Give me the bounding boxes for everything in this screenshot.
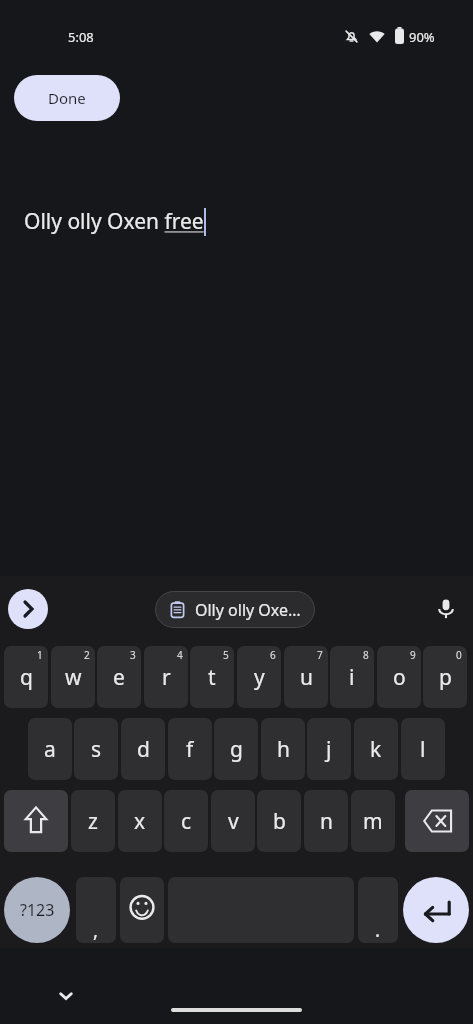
button[interactable]: j bbox=[307, 718, 351, 780]
staticText: n bbox=[320, 807, 333, 836]
button[interactable]: f bbox=[168, 718, 212, 780]
staticText: , bbox=[93, 917, 99, 943]
button[interactable]: x bbox=[118, 790, 162, 852]
staticText: 5:08 bbox=[68, 28, 94, 46]
button[interactable]: b bbox=[257, 790, 301, 852]
button[interactable]: Backspace bbox=[405, 790, 469, 852]
staticText: b bbox=[273, 807, 286, 836]
staticText: k bbox=[370, 735, 382, 764]
staticText: e bbox=[113, 663, 125, 692]
staticText: Done bbox=[48, 88, 86, 108]
staticText: i bbox=[349, 663, 355, 692]
staticText: j bbox=[326, 735, 332, 764]
button[interactable]: m bbox=[351, 790, 395, 852]
button[interactable]: e bbox=[97, 646, 141, 708]
staticText: o bbox=[393, 663, 406, 692]
staticText: d bbox=[137, 735, 150, 764]
staticText: y bbox=[254, 663, 265, 692]
button[interactable]: u bbox=[284, 646, 328, 708]
staticText: 8 bbox=[363, 648, 369, 662]
button[interactable]: c bbox=[164, 790, 208, 852]
button[interactable]: y bbox=[237, 646, 281, 708]
staticText: x bbox=[134, 807, 146, 836]
button[interactable]: Enter bbox=[403, 877, 469, 943]
button[interactable]: z bbox=[71, 790, 115, 852]
staticText: . bbox=[375, 917, 381, 943]
button[interactable]: q bbox=[4, 646, 48, 708]
staticText: 9 bbox=[410, 648, 416, 662]
button[interactable]: l bbox=[401, 718, 445, 780]
staticText: Olly olly Oxen free bbox=[24, 207, 204, 236]
button[interactable]: ?123 bbox=[4, 877, 70, 943]
staticText: 4 bbox=[177, 648, 183, 662]
staticText: 1 bbox=[37, 648, 43, 662]
staticText: 2 bbox=[84, 648, 90, 662]
staticText: t bbox=[208, 663, 216, 692]
button[interactable]: Voice input bbox=[427, 590, 465, 628]
staticText: 90% bbox=[409, 28, 435, 46]
button[interactable]: w bbox=[51, 646, 95, 708]
button[interactable]: Emoji bbox=[120, 877, 164, 943]
staticText: m bbox=[363, 807, 383, 836]
button[interactable]: i bbox=[330, 646, 374, 708]
staticText: q bbox=[20, 663, 33, 692]
button[interactable]: , bbox=[76, 877, 116, 943]
staticText: c bbox=[181, 807, 192, 836]
staticText: r bbox=[162, 663, 171, 692]
button[interactable]: Done bbox=[14, 75, 120, 121]
staticText: f bbox=[186, 735, 194, 764]
button[interactable]: More suggestions bbox=[8, 589, 48, 629]
button[interactable]: . bbox=[358, 877, 398, 943]
button[interactable]: t bbox=[190, 646, 234, 708]
staticText: l bbox=[420, 735, 426, 764]
staticText: 7 bbox=[317, 648, 323, 662]
button[interactable]: Olly olly Oxe… bbox=[155, 591, 315, 628]
staticText: ?123 bbox=[20, 899, 55, 921]
staticText: 3 bbox=[130, 648, 136, 662]
button[interactable]: s bbox=[74, 718, 118, 780]
staticText: 0 bbox=[456, 648, 462, 662]
staticText: u bbox=[300, 663, 313, 692]
staticText: Olly olly Oxe… bbox=[195, 599, 301, 621]
button[interactable]: Shift bbox=[4, 790, 68, 852]
button[interactable]: Hide keyboard bbox=[47, 977, 85, 1015]
staticText: g bbox=[230, 735, 243, 764]
button[interactable]: d bbox=[121, 718, 165, 780]
staticText: a bbox=[44, 735, 56, 764]
staticText: 5 bbox=[223, 648, 229, 662]
button[interactable]: v bbox=[211, 790, 255, 852]
button[interactable]: g bbox=[214, 718, 258, 780]
staticText: p bbox=[439, 663, 452, 692]
button[interactable]: k bbox=[354, 718, 398, 780]
staticText: z bbox=[88, 807, 98, 836]
staticText: 6 bbox=[270, 648, 276, 662]
staticText: s bbox=[91, 735, 102, 764]
button[interactable]: o bbox=[377, 646, 421, 708]
button[interactable]: n bbox=[304, 790, 348, 852]
staticText: v bbox=[228, 807, 239, 836]
button[interactable]: p bbox=[423, 646, 467, 708]
button[interactable]: a bbox=[28, 718, 72, 780]
staticText: w bbox=[65, 663, 82, 692]
staticText: h bbox=[277, 735, 290, 764]
button[interactable]: h bbox=[261, 718, 305, 780]
button[interactable]: r bbox=[144, 646, 188, 708]
